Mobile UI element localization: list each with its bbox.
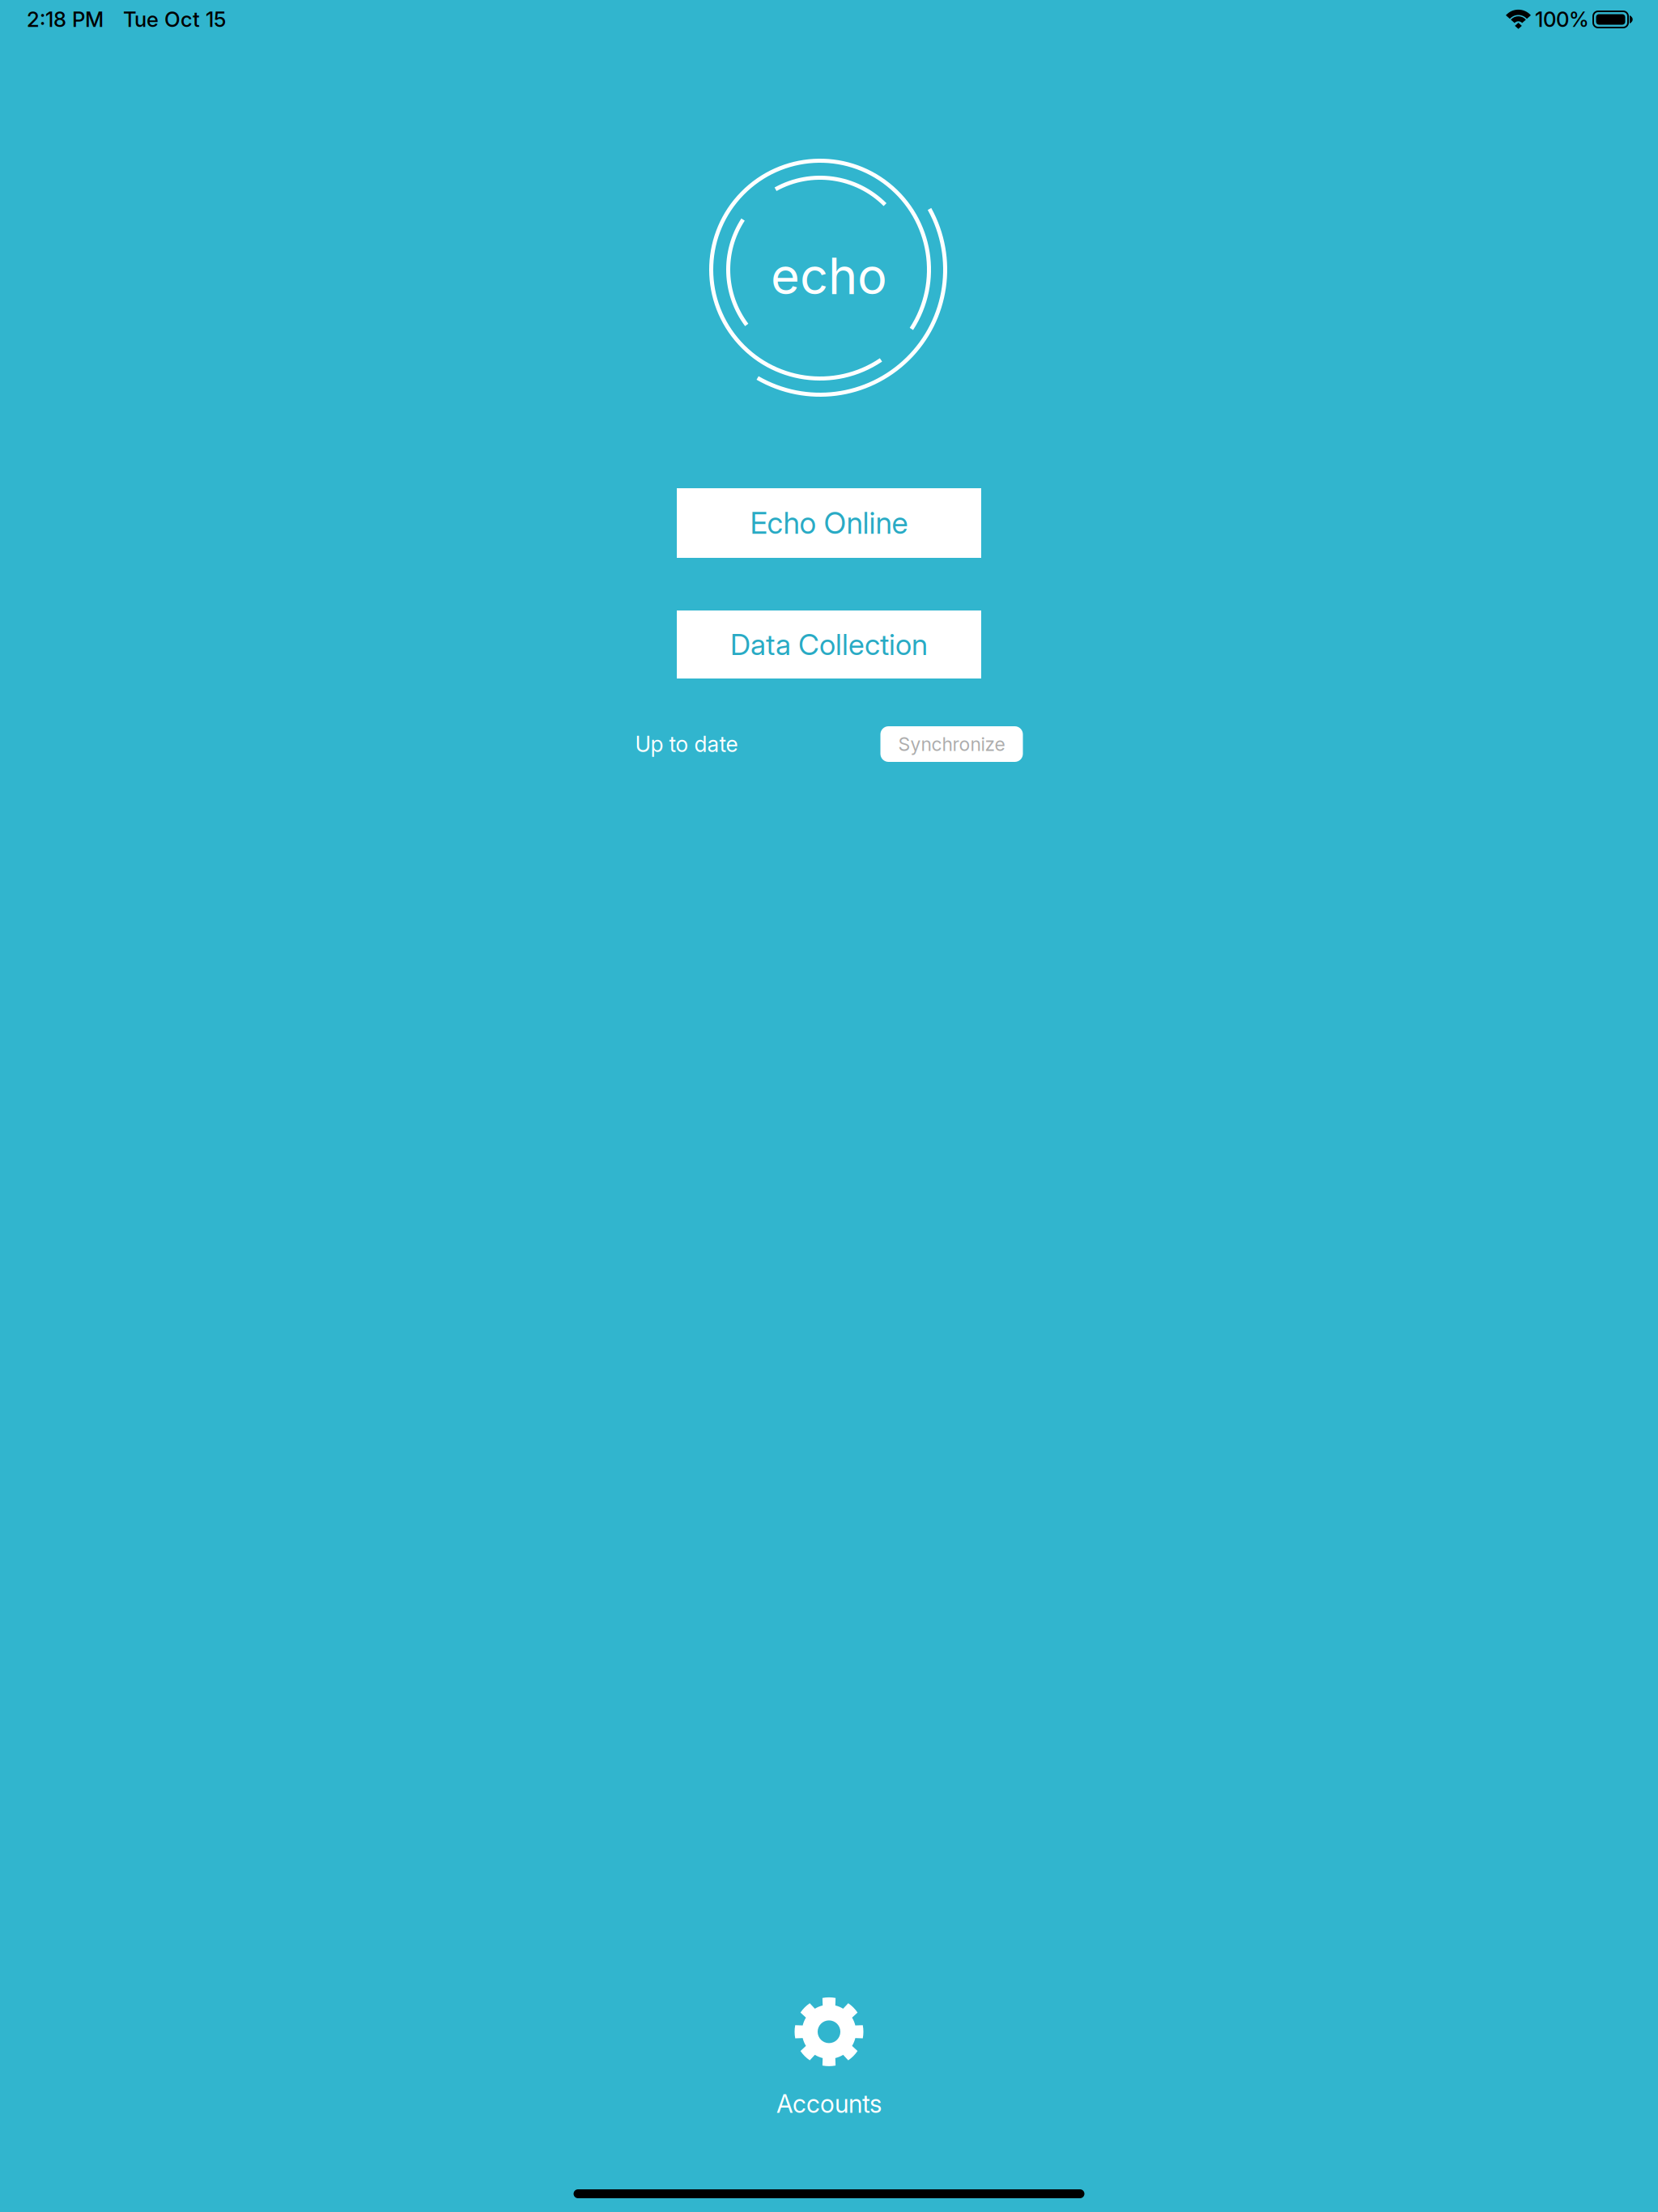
staticText: 2:18 PM: [27, 7, 104, 32]
staticText: Data Collection: [730, 627, 928, 662]
button[interactable]: Data Collection: [677, 610, 981, 678]
staticText: 100%: [1535, 7, 1589, 32]
staticText: Up to date: [635, 731, 738, 757]
staticText: Synchronize: [898, 733, 1005, 755]
staticText: Accounts: [776, 2089, 882, 2119]
button[interactable]: Synchronize: [880, 726, 1023, 762]
staticText: Echo Online: [750, 505, 908, 541]
staticText: echo: [771, 246, 887, 306]
button[interactable]: Echo Online: [677, 488, 981, 558]
button[interactable]: Accounts: [740, 1997, 918, 2119]
staticText: Tue Oct 15: [123, 7, 226, 32]
